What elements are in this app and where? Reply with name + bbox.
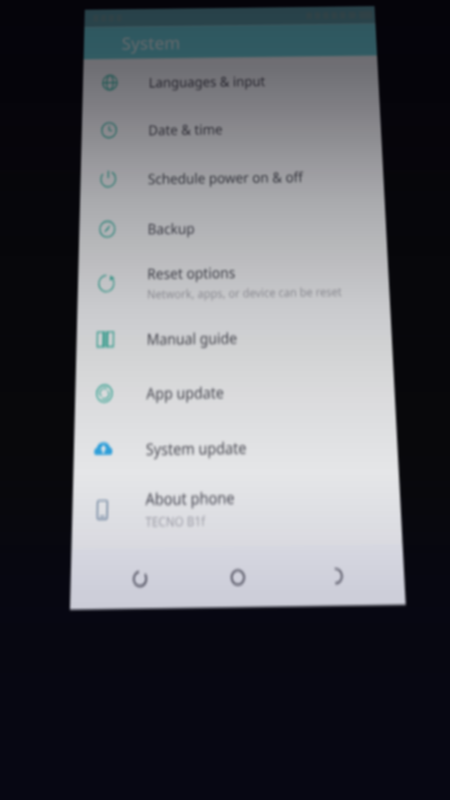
staticText: Schedule power on & off [148, 167, 304, 188]
button[interactable]: Date & time [81, 103, 382, 155]
staticText: Reset options [147, 262, 235, 284]
button[interactable]: Manual guide [76, 309, 393, 367]
button[interactable]: Home [220, 557, 255, 597]
button[interactable]: Back [318, 556, 353, 596]
button[interactable]: About phone [72, 474, 402, 543]
staticText: Manual guide [147, 328, 238, 349]
staticText: System update [146, 437, 247, 460]
button[interactable]: Languages & input [82, 56, 379, 107]
button[interactable]: System update [73, 417, 399, 478]
staticText: TECNO B1f [145, 512, 205, 531]
button[interactable]: System [84, 24, 377, 60]
staticText: System [121, 31, 181, 54]
button[interactable]: App update [75, 362, 396, 422]
staticText: Backup [147, 219, 195, 239]
staticText: Network, apps, or device can be reset [147, 283, 343, 302]
button[interactable]: Backup [79, 200, 387, 255]
staticText: App update [146, 382, 224, 404]
staticText: About phone [145, 486, 235, 510]
staticText: Languages & input [149, 72, 266, 91]
staticText: Date & time [148, 120, 223, 139]
button[interactable]: Recents [122, 559, 157, 598]
button[interactable]: Schedule power on & off [80, 151, 385, 204]
button[interactable]: Reset options [77, 251, 390, 313]
